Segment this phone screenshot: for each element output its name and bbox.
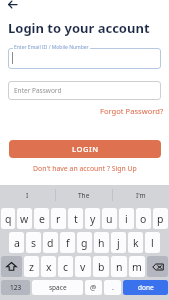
staticText: w [20, 212, 29, 226]
button[interactable]: Enter Password [8, 81, 161, 100]
button[interactable]: n [111, 256, 127, 277]
button[interactable]: Backspace [147, 256, 168, 277]
staticText: v [80, 260, 86, 274]
button[interactable]: b [93, 256, 109, 277]
button[interactable]: 123 [1, 280, 30, 295]
staticText: . [112, 283, 114, 293]
button[interactable]: e [34, 208, 49, 229]
staticText: n [116, 260, 123, 274]
staticText: Enter Password [14, 86, 62, 95]
button[interactable]: u [102, 208, 117, 229]
button[interactable]: done [123, 280, 168, 295]
staticText: t [74, 212, 78, 226]
staticText: 123 [10, 283, 22, 292]
staticText: done [138, 283, 154, 292]
button[interactable]: x [41, 256, 56, 277]
staticText: g [81, 236, 88, 250]
staticText: q [5, 212, 12, 226]
staticText: I [26, 191, 29, 200]
button[interactable]: z [24, 256, 39, 277]
button[interactable]: r [51, 208, 66, 229]
staticText: I'm [136, 191, 146, 200]
staticText: j [117, 236, 120, 250]
button[interactable]: d [43, 232, 58, 253]
staticText: m [132, 260, 142, 274]
button[interactable]: . [104, 280, 121, 295]
button[interactable]: t [68, 208, 83, 229]
button[interactable]: LOGIN [9, 140, 161, 158]
staticText: k [133, 236, 139, 250]
staticText: Don't have an account ? Sign Up [33, 164, 137, 173]
button[interactable]: j [111, 232, 126, 253]
button[interactable]: m [129, 256, 145, 277]
staticText: Enter Email ID / Mobile Number [14, 44, 89, 51]
staticText: Forgot Password? [100, 106, 164, 116]
staticText: i [125, 212, 128, 226]
button[interactable]: Don't have an account ? Sign Up [0, 162, 169, 175]
staticText: The [78, 191, 90, 200]
staticText: f [66, 236, 70, 250]
button[interactable]: o [136, 208, 151, 229]
button[interactable]: s [26, 232, 41, 253]
button[interactable]: l [145, 232, 160, 253]
staticText: e [39, 212, 45, 226]
staticText: p [157, 212, 164, 226]
staticText: b [98, 260, 105, 274]
staticText: l [151, 236, 154, 250]
staticText: space [49, 283, 67, 292]
staticText: u [106, 212, 113, 226]
staticText: x [46, 260, 52, 274]
button[interactable]: y [85, 208, 100, 229]
button[interactable]: q [1, 208, 15, 229]
button[interactable]: f [60, 232, 75, 253]
button[interactable]: a [9, 232, 24, 253]
staticText: @ [90, 283, 97, 293]
staticText: c [63, 260, 69, 274]
button[interactable]: Forgot Password? [95, 104, 164, 118]
button[interactable]: space [32, 280, 83, 295]
button[interactable]: w [17, 208, 32, 229]
staticText: s [31, 236, 37, 250]
button[interactable]: Shift [1, 256, 22, 277]
button[interactable]: i [119, 208, 134, 229]
staticText: Login to your account [8, 19, 150, 37]
staticText: LOGIN [72, 144, 99, 154]
button[interactable]: v [75, 256, 91, 277]
staticText: a [14, 236, 20, 250]
staticText: z [29, 260, 34, 274]
button[interactable]: I [0, 185, 55, 205]
staticText: o [140, 212, 147, 226]
staticText: r [56, 212, 61, 226]
button[interactable]: h [94, 232, 109, 253]
button[interactable] [8, 48, 161, 69]
staticText: h [98, 236, 105, 250]
button[interactable]: @ [85, 280, 102, 295]
staticText: y [90, 212, 96, 226]
staticText: d [47, 236, 54, 250]
button[interactable]: Back [2, 0, 22, 14]
button[interactable]: g [77, 232, 92, 253]
button[interactable]: The [56, 185, 112, 205]
button[interactable]: c [58, 256, 73, 277]
button[interactable]: I'm [113, 185, 169, 205]
button[interactable]: k [128, 232, 143, 253]
button[interactable]: p [153, 208, 168, 229]
